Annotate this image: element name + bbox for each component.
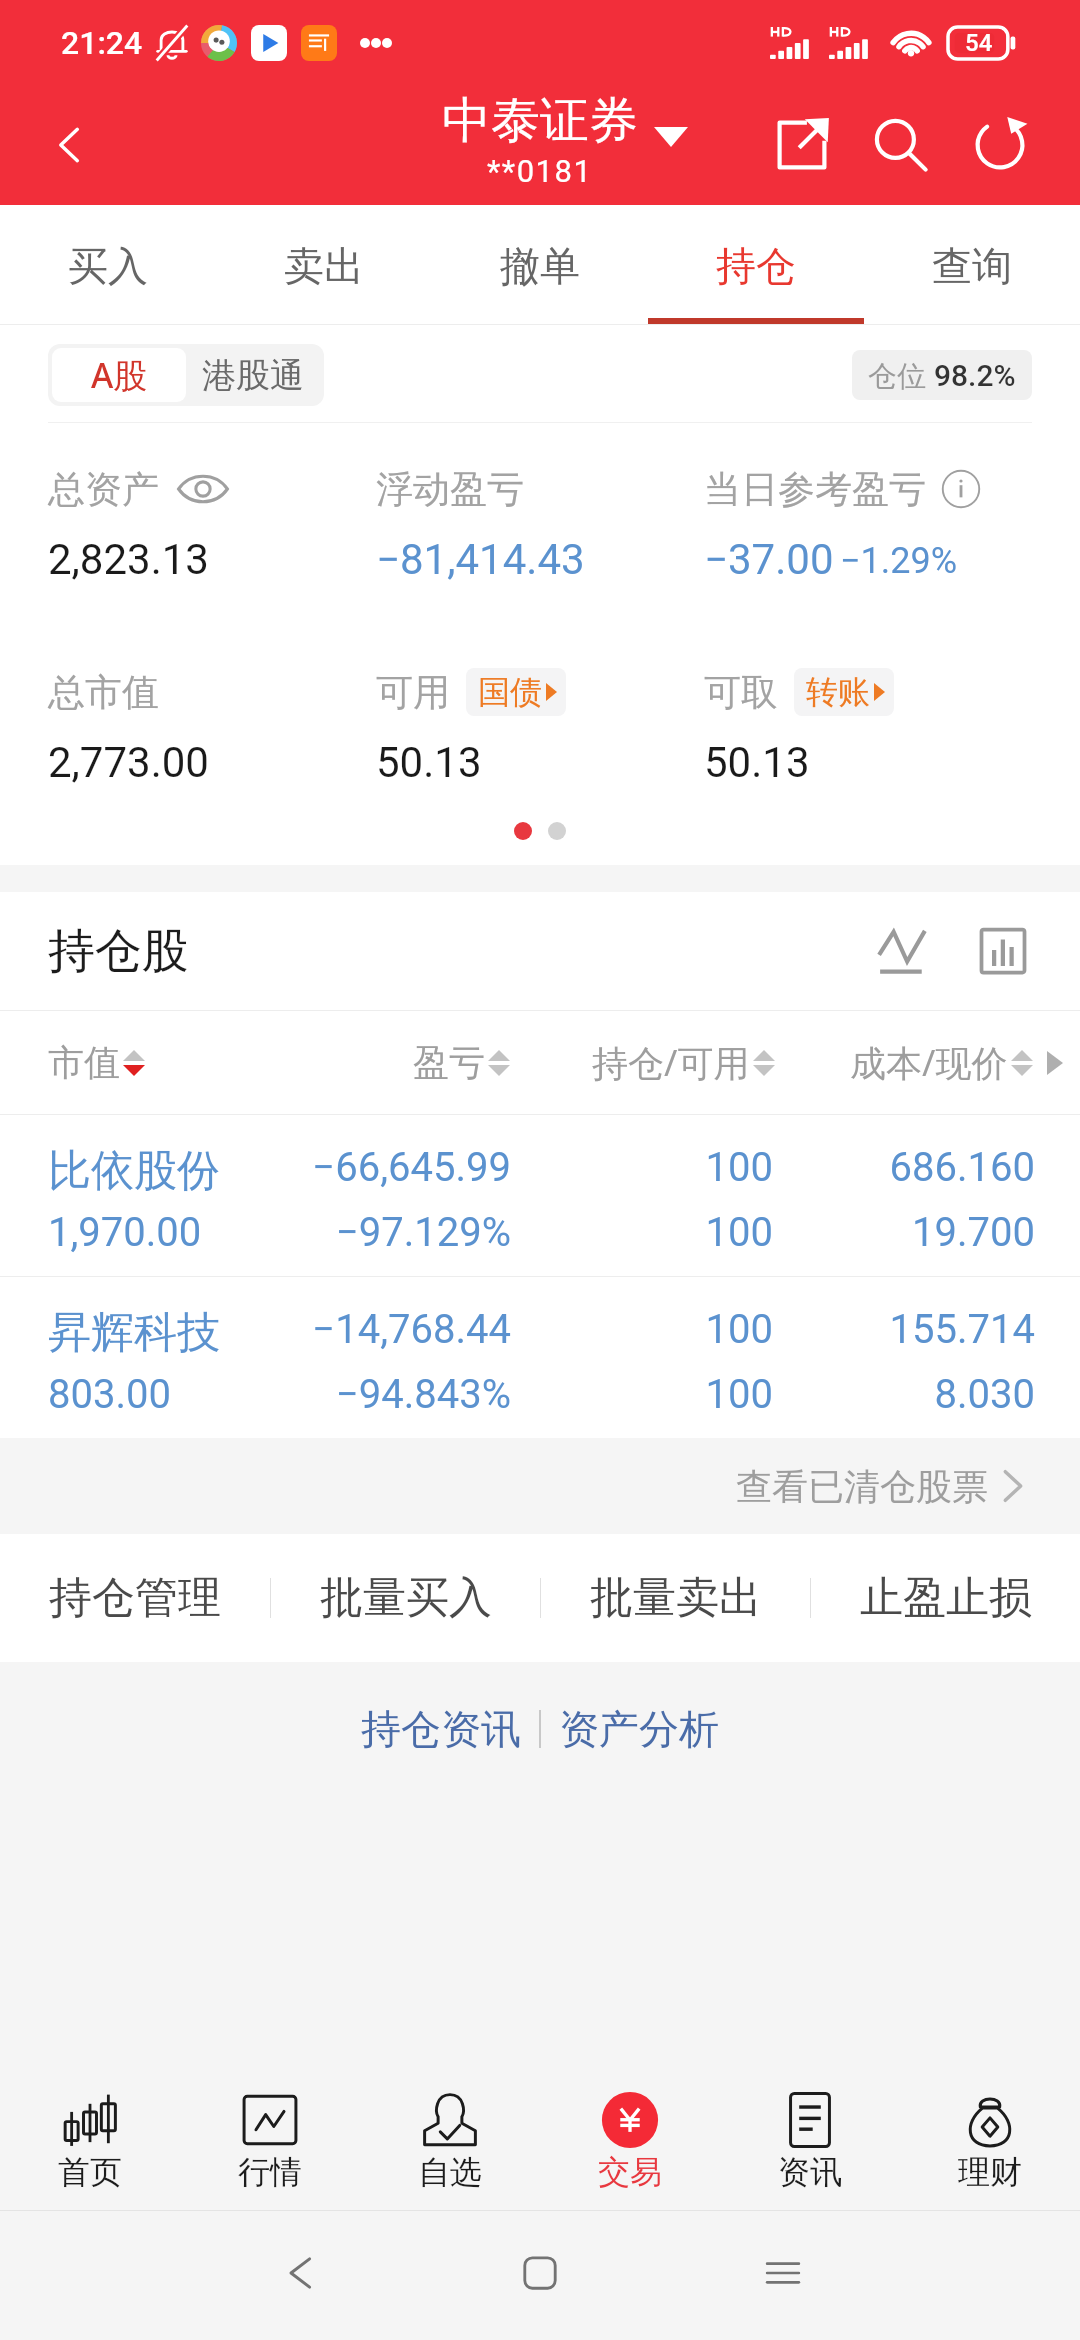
staticText: 54: [965, 29, 993, 57]
staticText: 100: [511, 1371, 773, 1418]
staticText: −66,645.99: [301, 1144, 511, 1191]
staticText: A股: [91, 352, 148, 398]
staticText: 仓位: [868, 355, 934, 395]
button[interactable]: 成本/现价: [775, 1011, 1063, 1114]
button[interactable]: 理财: [900, 2050, 1080, 2210]
staticText: 撤单: [500, 241, 580, 291]
staticText: 盈亏: [413, 1040, 485, 1085]
staticText: 买入: [68, 241, 148, 291]
staticText: 浮动盈亏: [376, 466, 524, 513]
staticText: 50.13: [376, 738, 482, 787]
staticText: 686.160: [773, 1144, 1035, 1191]
staticText: 持仓股: [48, 922, 189, 981]
staticText: 交易: [598, 2152, 662, 2192]
staticText: −94.843%: [301, 1371, 511, 1418]
staticText: 50.13: [704, 738, 810, 787]
staticText: 803.00: [48, 1371, 301, 1418]
staticText: 行情: [238, 2152, 302, 2192]
button[interactable]: 持仓/可用: [510, 1011, 775, 1114]
button[interactable]: 中泰证券: [442, 90, 638, 189]
button[interactable]: 市值: [48, 1011, 300, 1114]
staticText: 查看已清仓股票: [736, 1464, 988, 1509]
staticText: 总资产: [48, 466, 159, 513]
button[interactable]: 止盈止损: [811, 1534, 1080, 1662]
staticText: 港股通: [202, 354, 304, 397]
button[interactable]: 自选: [360, 2050, 540, 2210]
staticText: −37.00: [704, 535, 834, 584]
staticText: 可用: [376, 669, 450, 716]
button[interactable]: 持仓: [648, 205, 864, 325]
button[interactable]: A股: [52, 348, 186, 402]
staticText: 批量买入: [320, 1571, 492, 1625]
staticText: −14,768.44: [301, 1306, 511, 1353]
staticText: 卖出: [284, 241, 364, 291]
staticText: 可取: [704, 669, 778, 716]
staticText: 100: [511, 1144, 773, 1191]
staticText: 100: [511, 1306, 773, 1353]
button[interactable]: 资讯: [720, 2050, 900, 2210]
button[interactable]: 比依股份: [0, 1115, 1080, 1276]
staticText: **0181: [487, 153, 593, 189]
button[interactable]: Recents: [761, 2251, 805, 2295]
button[interactable]: 撤单: [432, 205, 648, 325]
staticText: 比依股份: [48, 1144, 301, 1198]
staticText: 资产分析: [559, 1704, 719, 1754]
button[interactable]: 港股通: [186, 348, 320, 402]
staticText: 止盈止损: [860, 1571, 1032, 1625]
staticText: 国债: [478, 672, 542, 712]
staticText: 持仓/可用: [592, 1038, 750, 1087]
button[interactable]: 仓位: [868, 350, 1016, 400]
button[interactable]: 转账: [806, 668, 885, 716]
staticText: 持仓: [716, 241, 796, 291]
staticText: −81,414.43: [376, 535, 585, 584]
button[interactable]: 首页: [0, 2050, 180, 2210]
button[interactable]: 卖出: [216, 205, 432, 325]
staticText: 100: [511, 1209, 773, 1256]
staticText: 持仓管理: [49, 1571, 221, 1625]
staticText: 转账: [806, 672, 870, 712]
staticText: 成本/现价: [850, 1038, 1008, 1087]
button[interactable]: Back: [0, 85, 140, 205]
button[interactable]: 买入: [0, 205, 216, 325]
button[interactable]: Home: [518, 2251, 562, 2295]
staticText: 批量卖出: [590, 1571, 762, 1625]
staticText: 自选: [418, 2152, 482, 2192]
staticText: 2,823.13: [48, 535, 209, 584]
button[interactable]: Refresh: [950, 85, 1049, 205]
staticText: 首页: [58, 2152, 122, 2192]
button[interactable]: 行情: [180, 2050, 360, 2210]
staticText: 昇辉科技: [48, 1306, 301, 1360]
button[interactable]: 批量卖出: [541, 1534, 810, 1662]
button[interactable]: 昇辉科技: [0, 1277, 1080, 1438]
staticText: 98.2%: [934, 358, 1016, 393]
staticText: 8.030: [773, 1371, 1035, 1418]
button[interactable]: 持仓资讯: [343, 1690, 539, 1768]
staticText: 155.714: [773, 1306, 1035, 1353]
button[interactable]: Bar chart: [953, 903, 1053, 999]
staticText: 市值: [48, 1040, 120, 1085]
button[interactable]: 国债: [478, 668, 557, 716]
button[interactable]: Share: [752, 85, 851, 205]
staticText: −1.29%: [840, 540, 958, 582]
button[interactable]: Search: [851, 85, 950, 205]
staticText: 1,970.00: [48, 1209, 301, 1256]
button[interactable]: 资产分析: [541, 1690, 737, 1768]
staticText: 中泰证券: [442, 90, 638, 152]
staticText: 理财: [958, 2152, 1022, 2192]
button[interactable]: Trend chart: [853, 903, 953, 999]
staticText: 查询: [932, 241, 1012, 291]
button[interactable]: 批量买入: [271, 1534, 540, 1662]
button[interactable]: 盈亏: [300, 1011, 510, 1114]
button[interactable]: 查询: [864, 205, 1080, 325]
staticText: 2,773.00: [48, 738, 209, 787]
staticText: 19.700: [773, 1209, 1035, 1256]
button[interactable]: Back: [278, 2251, 322, 2295]
staticText: 总市值: [48, 669, 159, 716]
button[interactable]: 交易: [540, 2050, 720, 2210]
staticText: −97.129%: [301, 1209, 511, 1256]
staticText: 当日参考盈亏: [704, 466, 926, 513]
staticText: 21:24: [61, 24, 143, 62]
button[interactable]: 持仓管理: [0, 1534, 270, 1662]
button[interactable]: 查看已清仓股票: [0, 1438, 1080, 1534]
staticText: 资讯: [778, 2152, 842, 2192]
